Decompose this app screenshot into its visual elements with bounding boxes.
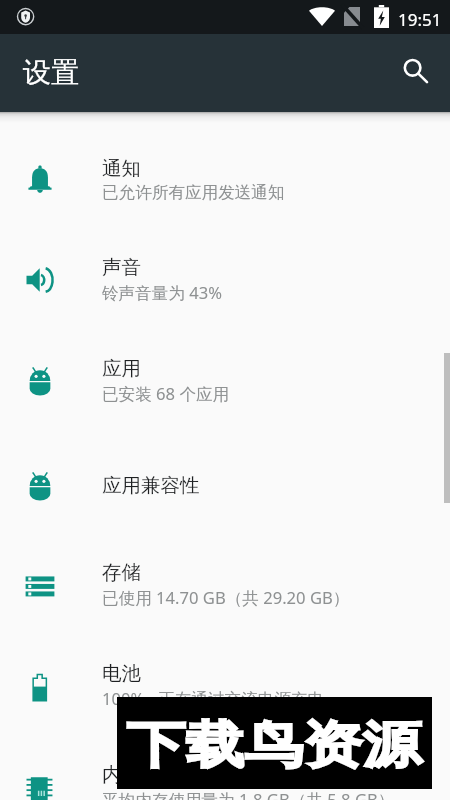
staticText: 已安装 68 个应用: [102, 382, 230, 405]
staticText: 电池: [102, 661, 141, 686]
button[interactable]: Search: [394, 49, 438, 93]
button[interactable]: 电池: [0, 635, 450, 736]
staticText: 已允许所有应用发送通知: [102, 182, 285, 203]
staticText: 19:51: [398, 8, 442, 31]
staticText: 已使用 14.70 GB（共 29.20 GB）: [102, 586, 350, 609]
button[interactable]: 通知: [0, 129, 450, 230]
staticText: 声音: [102, 255, 141, 280]
staticText: 设置: [23, 55, 79, 90]
staticText: 应用兼容性: [102, 473, 200, 498]
staticText: 通知: [102, 156, 141, 181]
staticText: 内存: [102, 762, 141, 787]
button[interactable]: 声音: [0, 229, 450, 330]
staticText: 存储: [102, 560, 141, 585]
staticText: 铃声音量为 43%: [102, 281, 223, 304]
button[interactable]: 存储: [0, 534, 450, 635]
staticText: 下载鸟资源: [126, 714, 421, 777]
staticText: 100% - 正在通过交流电源充电: [102, 687, 325, 710]
staticText: 应用: [102, 356, 141, 381]
button[interactable]: 应用: [0, 330, 450, 431]
button[interactable]: 应用兼容性: [0, 435, 450, 536]
staticText: 平均内存使用量为 1.8 GB（共 5.8 GB）: [102, 788, 395, 800]
button[interactable]: 内存: [0, 736, 450, 800]
